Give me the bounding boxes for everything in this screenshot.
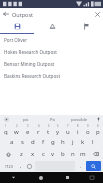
button[interactable]: Po [39,115,66,124]
button[interactable]: Keyboard indicator [81,172,103,183]
button[interactable]: b [58,148,68,160]
button[interactable]: . [76,161,85,171]
button[interactable]: d [28,136,38,148]
button[interactable]: l [88,136,98,148]
staticText: r [37,128,40,136]
button[interactable]: 5 [43,124,53,136]
staticText: f [42,138,45,146]
staticText: 0 [97,124,99,128]
button[interactable]: possible [66,115,93,124]
staticText: y [56,128,60,136]
staticText: u [66,128,70,136]
button[interactable]: 9 [83,124,93,136]
staticText: pa [23,117,28,123]
staticText: , [20,163,22,170]
button[interactable]: Alerts [35,20,69,33]
button[interactable]: Back [0,172,27,183]
button[interactable]: x [27,148,38,160]
staticText: Port Oliver [4,37,28,43]
button[interactable]: s [17,136,28,148]
button[interactable]: More suggestions [0,115,12,124]
staticText: b [61,150,65,158]
staticText: 7 [67,124,69,128]
button[interactable]: ?123 [1,161,16,171]
button[interactable]: 0 [93,124,103,136]
button[interactable]: 8 [73,124,83,136]
button[interactable]: Emoji [25,161,34,171]
button[interactable]: Bensor Mining Outpost [0,58,103,70]
staticText: j [72,138,74,146]
button[interactable]: c [38,148,48,160]
staticText: g [51,138,55,146]
button[interactable]: Flags [69,20,103,33]
button[interactable]: pa [12,115,39,124]
button[interactable]: Baskins Research Outpost [0,70,103,82]
staticText: 1 [5,124,7,128]
staticText: l [92,138,94,146]
button[interactable]: v [48,148,58,160]
staticText: v [51,150,55,158]
staticText: ?123 [5,164,13,169]
button[interactable]: 2 [11,124,22,136]
staticText: 3 [27,124,29,128]
staticText: 2 [16,124,18,128]
button[interactable]: h [58,136,68,148]
staticText: n [71,150,75,158]
button[interactable]: j [68,136,78,148]
staticText: d [31,138,35,146]
button[interactable]: k [78,136,88,148]
staticText: t [47,128,50,136]
button[interactable]: m [78,148,88,160]
staticText: q [4,128,8,136]
button[interactable]: Recents [54,172,81,183]
staticText: Hokes Research Outpost [4,49,58,55]
button[interactable]: Hokes Research Outpost [0,46,103,58]
staticText: a [10,138,14,146]
staticText: m [80,150,86,158]
button[interactable]: Back [0,8,12,20]
button[interactable]: 7 [63,124,73,136]
staticText: possible [71,117,88,123]
button[interactable]: 6 [53,124,63,136]
staticText: s [21,138,24,146]
button[interactable]: 1 [0,124,11,136]
staticText: w [14,128,19,136]
staticText: i [77,128,79,136]
staticText: k [81,138,85,146]
staticText: x [31,150,35,158]
button[interactable]: Voice input [93,115,103,124]
staticText: 6 [57,124,59,128]
staticText: 9 [87,124,89,128]
staticText: c [42,150,45,158]
staticText: Baskins Research Outpost [4,73,61,79]
staticText: Bensor Mining Outpost [4,61,55,67]
staticText: . [80,163,82,170]
button[interactable]: Shift [0,148,16,160]
button[interactable]: z [16,148,27,160]
staticText: o [86,128,90,136]
button[interactable]: 4 [33,124,43,136]
button[interactable]: Outpost [12,8,91,20]
button[interactable]: n [68,148,78,160]
staticText: Po [50,117,56,123]
staticText: Outpost [12,11,34,18]
button[interactable]: Port Oliver [0,34,103,46]
staticText: 8 [77,124,79,128]
button[interactable]: Saved [0,20,35,33]
staticText: e [26,128,30,136]
button[interactable]: Home [27,172,54,183]
button[interactable]: , [16,161,25,171]
button[interactable]: a [6,136,17,148]
staticText: 5 [48,124,50,128]
staticText: 4 [38,124,40,128]
staticText: z [20,150,23,158]
button[interactable]: Search [86,161,101,171]
button[interactable]: 3 [22,124,33,136]
staticText: p [96,128,100,136]
staticText: h [61,138,65,146]
button[interactable]: Backspace [88,148,103,160]
button[interactable]: Clear [91,8,103,20]
button[interactable]: g [48,136,58,148]
button[interactable]: f [38,136,48,148]
